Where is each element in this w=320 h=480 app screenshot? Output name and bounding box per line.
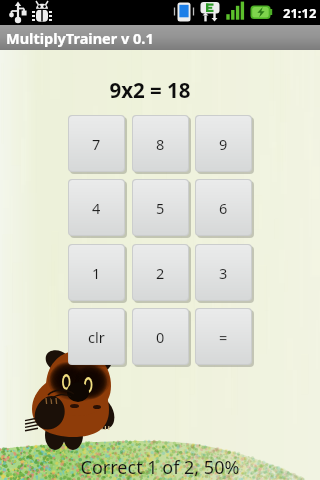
staticText: 6 [219,198,228,218]
button[interactable]: Digit 5 [132,179,191,238]
button[interactable]: Digit 0 [132,308,191,367]
button[interactable]: Digit 1 [68,244,127,303]
staticText: 4 [92,198,101,218]
staticText: 9 [219,134,228,154]
button[interactable]: Digit 3 [195,244,254,303]
staticText: Correct 1 of 2, 50% [0,455,320,480]
staticText: 5 [156,198,165,218]
button[interactable]: Digit 9 [195,115,254,174]
staticText: 8 [156,134,165,154]
button[interactable]: Digit 2 [132,244,191,303]
button[interactable]: Digit 4 [68,179,127,238]
staticText: = [219,327,228,347]
staticText: 9x2 = 18 [0,76,310,104]
button[interactable]: Equals, check the answer [195,308,254,367]
button[interactable]: Clear [68,308,127,367]
button[interactable]: Digit 8 [132,115,191,174]
staticText: 3 [219,263,228,283]
staticText: 0 [156,327,165,347]
button[interactable]: Digit 7 [68,115,127,174]
staticText: 1 [92,263,101,283]
staticText: clr [88,327,105,347]
staticText: 2 [156,263,165,283]
staticText: 7 [92,134,101,154]
button[interactable]: Digit 6 [195,179,254,238]
staticText: MultiplyTrainer v 0.1 [6,28,154,48]
staticText: 21:12 [283,4,317,22]
